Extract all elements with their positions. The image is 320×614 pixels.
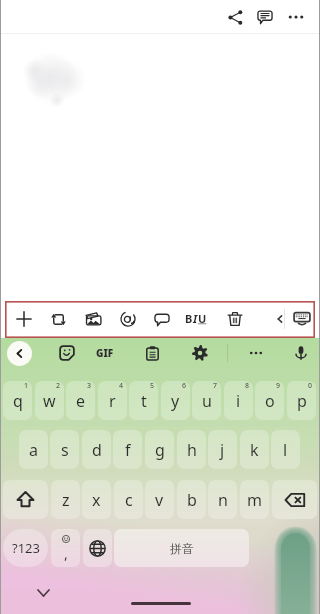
staticText: 9 — [276, 381, 281, 391]
staticText: , — [64, 544, 68, 563]
button[interactable]: GIF — [92, 343, 118, 363]
button[interactable]: z — [51, 480, 80, 519]
button[interactable]: More options — [283, 4, 309, 30]
staticText: e — [76, 390, 86, 412]
button[interactable]: Insert image — [79, 305, 107, 333]
staticText: s — [61, 439, 69, 461]
button[interactable]: Emoji and comma — [51, 529, 80, 567]
staticText: k — [250, 439, 259, 461]
staticText: y — [171, 390, 180, 412]
button[interactable]: l — [271, 430, 300, 469]
button[interactable]: n — [208, 480, 237, 519]
button[interactable]: r — [98, 381, 127, 420]
button[interactable]: c — [114, 480, 143, 519]
button[interactable]: f — [113, 430, 142, 469]
staticText: 7 — [213, 381, 218, 391]
staticText: z — [62, 489, 70, 511]
staticText: r — [109, 390, 116, 412]
staticText: l — [283, 439, 288, 461]
button[interactable]: Share — [222, 4, 248, 30]
staticText: 0 — [308, 381, 313, 391]
staticText: c — [125, 489, 133, 511]
staticText: 4 — [119, 381, 124, 391]
staticText: h — [187, 439, 197, 461]
button[interactable]: Settings — [187, 340, 213, 366]
button[interactable]: x — [82, 480, 111, 519]
staticText: B — [185, 311, 193, 326]
button[interactable]: d — [82, 430, 111, 469]
button[interactable]: m — [240, 480, 269, 519]
button[interactable]: Delete — [221, 305, 249, 333]
button[interactable]: Comment — [252, 4, 278, 30]
staticText: v — [155, 489, 164, 511]
staticText: i — [236, 390, 241, 412]
staticText: 8 — [245, 381, 250, 391]
button[interactable]: v — [145, 480, 174, 519]
staticText: x — [92, 489, 101, 511]
button[interactable]: e — [66, 381, 95, 420]
button[interactable]: a — [19, 430, 48, 469]
staticText: w — [43, 390, 56, 412]
button[interactable]: Repeat — [44, 305, 72, 333]
staticText: f — [125, 439, 131, 461]
staticText: ?123 — [12, 539, 40, 557]
staticText: U — [198, 311, 207, 326]
button[interactable]: s — [50, 430, 79, 469]
staticText: n — [218, 489, 228, 511]
staticText: m — [247, 489, 262, 511]
button[interactable]: ?123 — [3, 529, 48, 567]
button[interactable]: i — [224, 381, 253, 420]
button[interactable]: Collapse toolbar — [270, 309, 290, 329]
button[interactable]: k — [240, 430, 269, 469]
button[interactable]: Mention — [114, 305, 142, 333]
button[interactable]: h — [177, 430, 206, 469]
staticText: 6 — [182, 381, 187, 391]
button[interactable]: Change language — [83, 529, 112, 567]
button[interactable]: j — [208, 430, 237, 469]
staticText: 3 — [87, 381, 92, 391]
staticText: o — [265, 390, 275, 412]
staticText: d — [92, 439, 102, 461]
staticText: a — [29, 439, 38, 461]
staticText: I — [193, 311, 198, 326]
staticText: t — [141, 390, 147, 412]
button[interactable]: o — [255, 381, 284, 420]
button[interactable]: w — [35, 381, 64, 420]
button[interactable]: q — [3, 381, 32, 420]
staticText: b — [187, 489, 197, 511]
staticText: u — [202, 390, 212, 412]
button[interactable]: p — [287, 381, 316, 420]
staticText: GIF — [96, 346, 114, 360]
button[interactable]: t — [129, 381, 158, 420]
staticText: p — [297, 390, 307, 412]
button[interactable]: Add — [10, 305, 38, 333]
button[interactable]: Shift — [3, 480, 48, 519]
staticText: 2 — [56, 381, 61, 391]
staticText: 5 — [150, 381, 155, 391]
button[interactable]: Keyboard — [292, 308, 312, 328]
button[interactable]: Backspace — [272, 480, 317, 519]
staticText: 拼音 — [170, 541, 194, 556]
button[interactable]: Hide keyboard — [32, 582, 54, 604]
staticText: q — [13, 390, 23, 412]
staticText: g — [155, 439, 165, 461]
button[interactable]: Comment — [148, 305, 176, 333]
staticText: j — [220, 439, 225, 461]
button[interactable]: B — [180, 307, 212, 329]
button[interactable]: b — [177, 480, 206, 519]
button[interactable]: Voice input — [288, 340, 314, 366]
button[interactable]: More — [243, 340, 269, 366]
button[interactable]: Clipboard — [139, 340, 165, 366]
button[interactable]: Enter — [272, 519, 320, 614]
staticText: 1 — [24, 381, 29, 391]
button[interactable]: u — [192, 381, 221, 420]
button[interactable]: g — [145, 430, 174, 469]
button[interactable]: 拼音 — [114, 529, 249, 567]
button[interactable]: Stickers — [54, 340, 80, 366]
button[interactable]: Back — [7, 341, 32, 366]
button[interactable]: y — [161, 381, 190, 420]
